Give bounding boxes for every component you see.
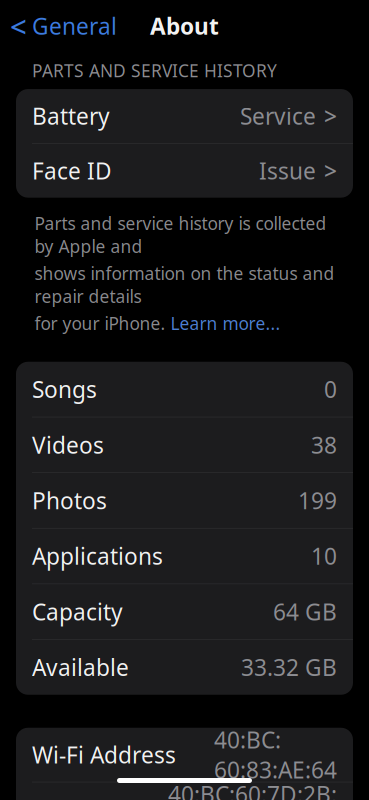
button[interactable]: Learn more... [170,312,280,335]
staticText: About [150,11,219,41]
staticText: Service [240,101,316,131]
staticText: < [10,7,27,46]
staticText: Capacity [32,597,123,627]
staticText: PARTS AND SERVICE HISTORY [32,59,277,82]
staticText: General [32,11,117,41]
staticText: Videos [32,430,104,460]
staticText: Face ID [32,156,112,186]
staticText: 40:BC:60:7D:2B:31 [168,779,337,800]
staticText: Available [32,652,129,682]
staticText: > [324,101,337,131]
staticText: Battery [32,101,110,131]
staticText: Songs [32,374,97,404]
staticText: for your iPhone. [34,312,170,335]
staticText: 38 [311,430,337,460]
staticText: Issue [259,156,316,186]
staticText: Learn more... [170,312,280,335]
staticText: 64 GB [273,597,337,627]
staticText: Parts and service history is collected b… [34,212,326,258]
staticText: Wi-Fi Address [32,740,176,770]
staticText: > [324,156,337,186]
staticText: shows information on the status and repa… [34,262,334,308]
button[interactable]: Face ID [16,144,353,198]
staticText: 199 [298,485,337,515]
staticText: 33.32 GB [241,652,337,682]
button[interactable]: < [0,7,127,45]
staticText: 10 [311,541,337,571]
staticText: 0 [324,374,337,404]
button[interactable]: Battery [16,89,353,143]
staticText: Applications [32,541,163,571]
staticText: Photos [32,485,107,515]
staticText: 40:BC:60:83:AE:64 [214,725,337,785]
